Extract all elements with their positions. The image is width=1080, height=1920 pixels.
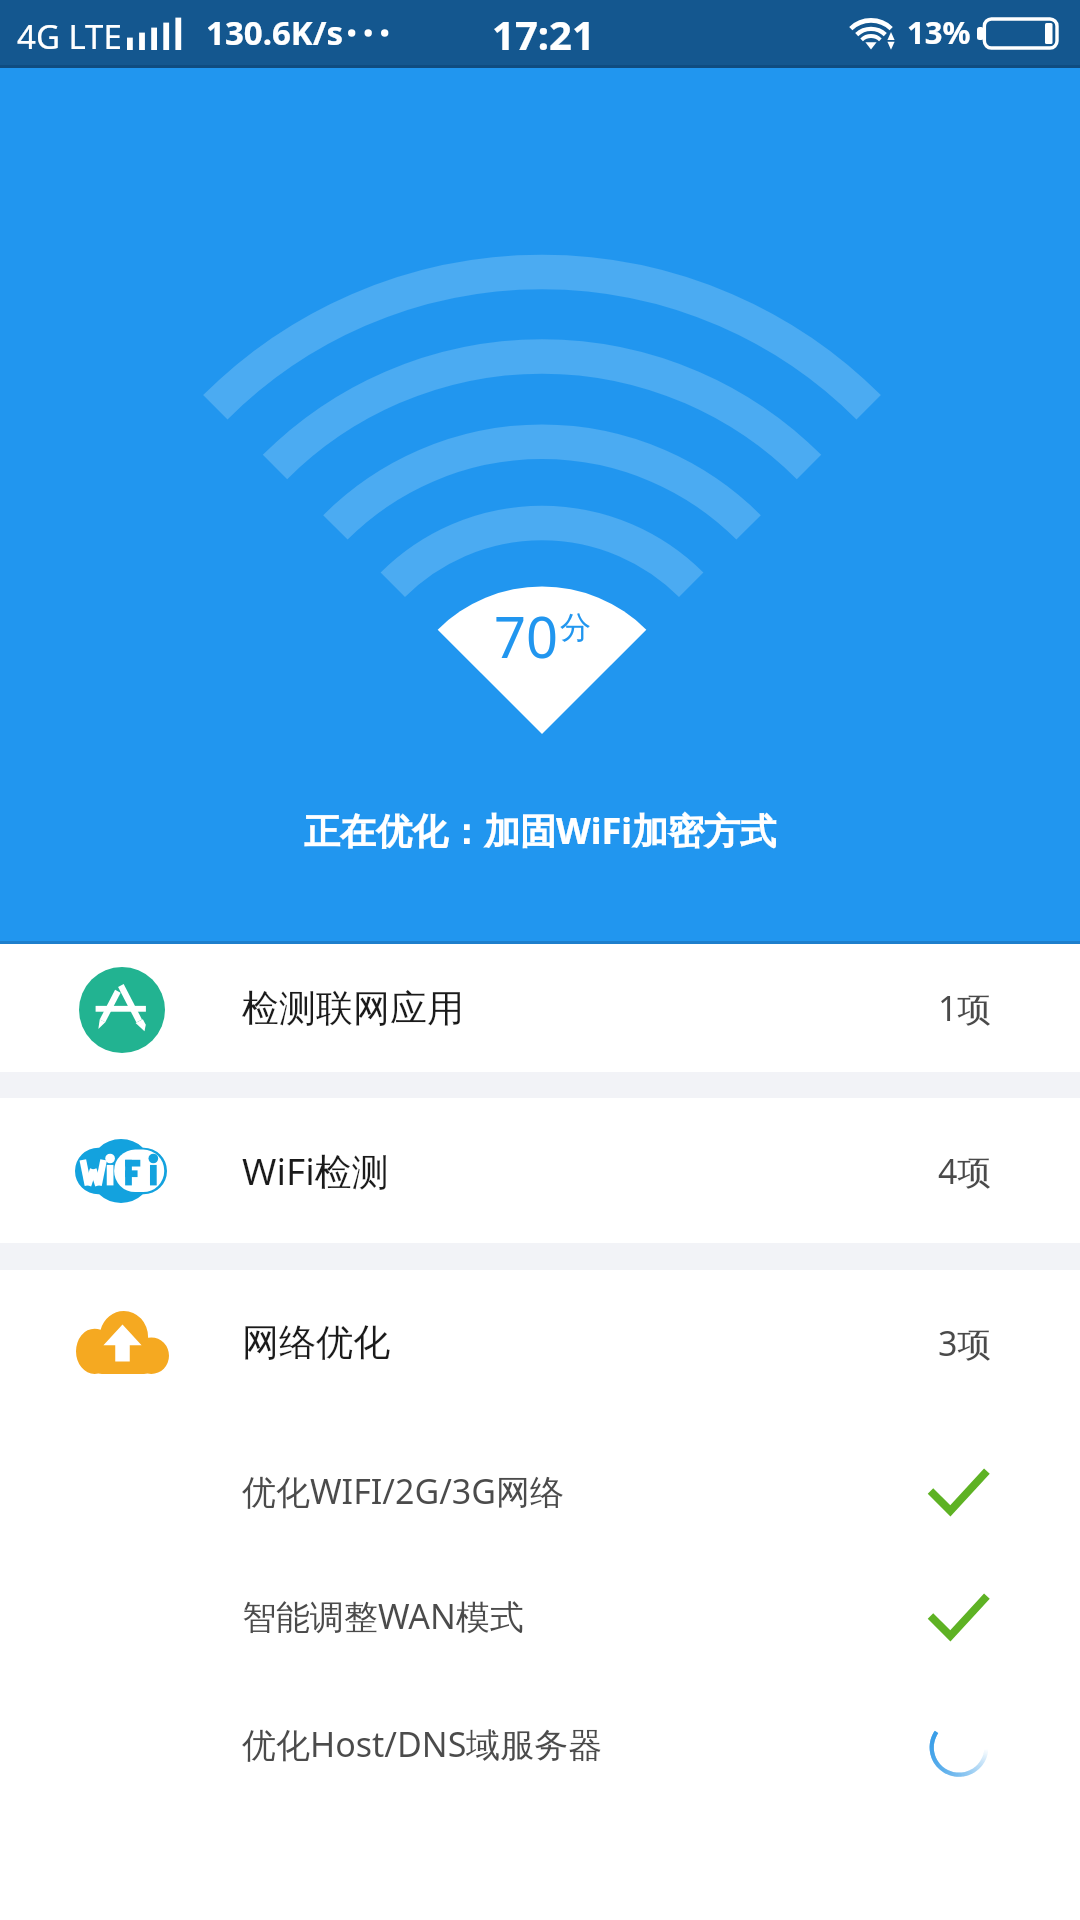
staticText: 4项 (938, 1148, 992, 1194)
staticText: 13% (907, 11, 971, 53)
other: Battery 13 percent (977, 19, 1057, 48)
other: Mobile signal strength (127, 17, 182, 50)
other: Network optimisation (76, 1311, 169, 1374)
staticText: 130.6K/s (206, 10, 343, 55)
button[interactable]: Network optimisation (0, 1270, 1080, 1415)
other: Connected apps (79, 967, 165, 1053)
staticText: 优化WIFI/2G/3G网络 (242, 1468, 565, 1514)
button[interactable]: 优化WIFI/2G/3G网络 (0, 1428, 1080, 1554)
staticText: 网络优化 (242, 1319, 390, 1366)
button[interactable]: Connected apps (0, 944, 1080, 1072)
button[interactable]: 智能调整WAN模式 (0, 1553, 1080, 1679)
button[interactable]: Wi-Fi check (0, 1098, 1080, 1243)
other: In progress (928, 1713, 990, 1775)
staticText: 正在优化：加固WiFi加密方式 (304, 806, 777, 855)
staticText: 3项 (938, 1320, 992, 1366)
other: Done (928, 1460, 990, 1522)
other: Done (928, 1585, 990, 1647)
staticText: 检测联网应用 (242, 985, 464, 1032)
staticText: 优化Host/DNS域服务器 (242, 1721, 603, 1767)
staticText: WiFi检测 (242, 1145, 389, 1196)
staticText: 4G LTE (17, 14, 122, 59)
staticText: 70 (494, 598, 559, 674)
other: Wi-Fi check (75, 1139, 167, 1203)
button[interactable]: 优化Host/DNS域服务器 (0, 1681, 1080, 1807)
staticText: 17:21 (492, 7, 595, 61)
other: Wi-Fi connected (845, 12, 897, 52)
staticText: 智能调整WAN模式 (242, 1593, 524, 1639)
staticText: 分 (560, 608, 591, 647)
staticText: 1项 (938, 985, 992, 1031)
